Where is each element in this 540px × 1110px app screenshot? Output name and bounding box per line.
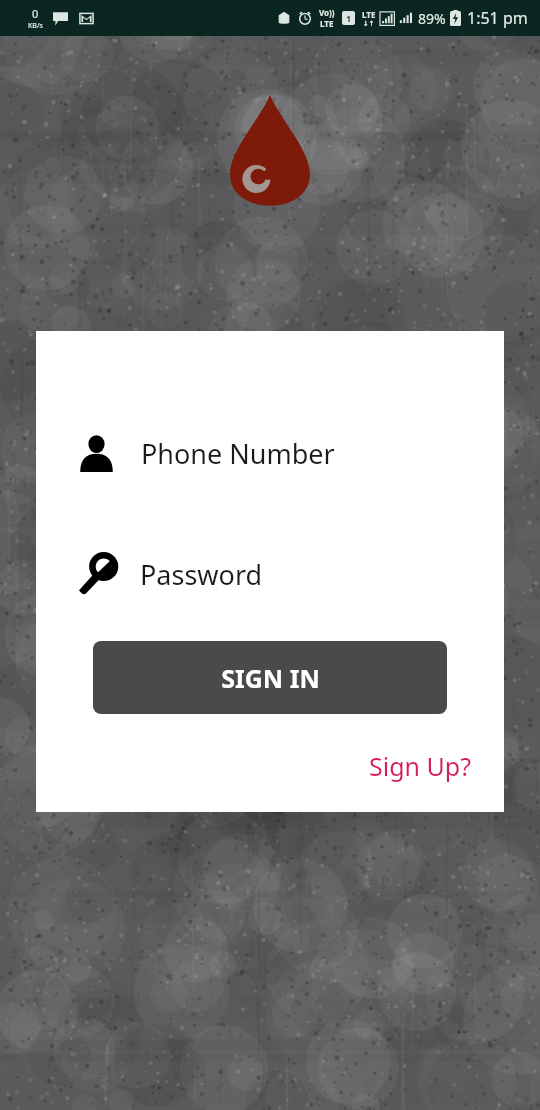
staticText: 89% — [418, 9, 446, 28]
staticText: ↓↑ — [363, 20, 375, 28]
staticText: Vo)) — [319, 7, 335, 18]
button[interactable]: Phone Number — [36, 425, 504, 481]
staticText: Password — [140, 556, 263, 593]
staticText: 1:51 pm — [467, 7, 528, 29]
staticText: LTE — [362, 9, 376, 20]
staticText: Sign Up? — [369, 749, 472, 783]
staticText: 1 — [346, 12, 352, 24]
button[interactable]: Password — [36, 546, 504, 602]
staticText: KB/s — [28, 21, 43, 31]
button[interactable]: Sign Up? — [359, 743, 504, 789]
staticText: Phone Number — [141, 435, 335, 472]
button[interactable]: SIGN IN — [93, 641, 447, 714]
staticText: LTE — [320, 18, 334, 29]
staticText: SIGN IN — [221, 661, 320, 695]
staticText: 0 — [32, 6, 39, 21]
